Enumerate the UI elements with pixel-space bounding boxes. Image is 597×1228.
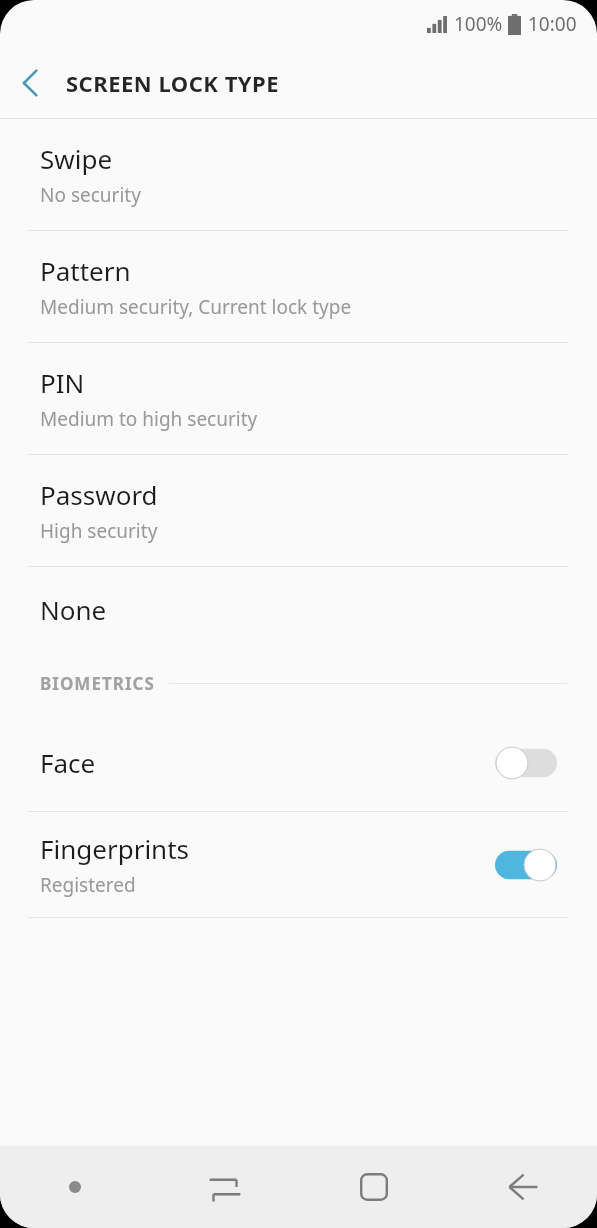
staticText: SCREEN LOCK TYPE — [66, 68, 280, 98]
staticText: Password — [40, 477, 158, 512]
button[interactable]: Disabled — [495, 746, 557, 780]
staticText: Pattern — [40, 253, 131, 288]
button[interactable]: Password — [0, 455, 597, 566]
staticText: Face — [40, 745, 96, 780]
button[interactable]: Face — [0, 714, 597, 811]
button[interactable]: Fingerprints — [0, 812, 597, 917]
button[interactable]: Home — [299, 1146, 448, 1228]
staticText: BIOMETRICS — [40, 672, 155, 695]
button[interactable]: Back — [0, 53, 60, 113]
button[interactable]: Back — [448, 1146, 597, 1228]
button[interactable]: PIN — [0, 343, 597, 454]
staticText: Registered — [40, 872, 136, 898]
button[interactable]: None — [0, 567, 597, 652]
button[interactable]: Pattern — [0, 231, 597, 342]
button[interactable]: Swipe — [0, 119, 597, 230]
staticText: 100% — [454, 11, 503, 37]
staticText: Swipe — [40, 141, 113, 176]
staticText: No security — [40, 182, 141, 208]
staticText: Fingerprints — [40, 831, 190, 866]
staticText: Medium security, Current lock type — [40, 294, 352, 320]
staticText: Medium to high security — [40, 406, 258, 432]
staticText: PIN — [40, 365, 85, 400]
button[interactable]: Enabled — [495, 848, 557, 882]
staticText: High security — [40, 518, 158, 544]
button[interactable]: Recent apps — [150, 1146, 299, 1228]
staticText: None — [40, 592, 107, 627]
staticText: 10:00 — [528, 11, 577, 37]
